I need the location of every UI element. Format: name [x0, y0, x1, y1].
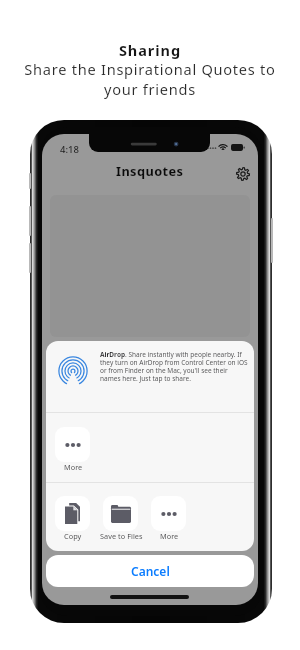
button[interactable]: Save to Files [103, 496, 138, 544]
button[interactable]: More [55, 427, 90, 475]
button[interactable]: More [151, 496, 186, 544]
staticText: More [64, 462, 83, 472]
staticText: Cancel [131, 563, 170, 579]
button[interactable]: Copy [55, 496, 90, 544]
staticText: 4:18 [60, 143, 79, 156]
staticText: Copy [64, 531, 82, 541]
staticText: AirDrop. Share instantly with people nea… [100, 350, 252, 383]
staticText: Save to Files [100, 531, 143, 541]
staticText: More [160, 531, 179, 541]
button[interactable]: Settings [234, 165, 251, 182]
staticText: Sharing [0, 40, 300, 60]
button[interactable]: Cancel [46, 555, 254, 587]
staticText: Insquotes [116, 162, 184, 179]
staticText: Share the Inspirational Quotes to your f… [0, 59, 300, 100]
